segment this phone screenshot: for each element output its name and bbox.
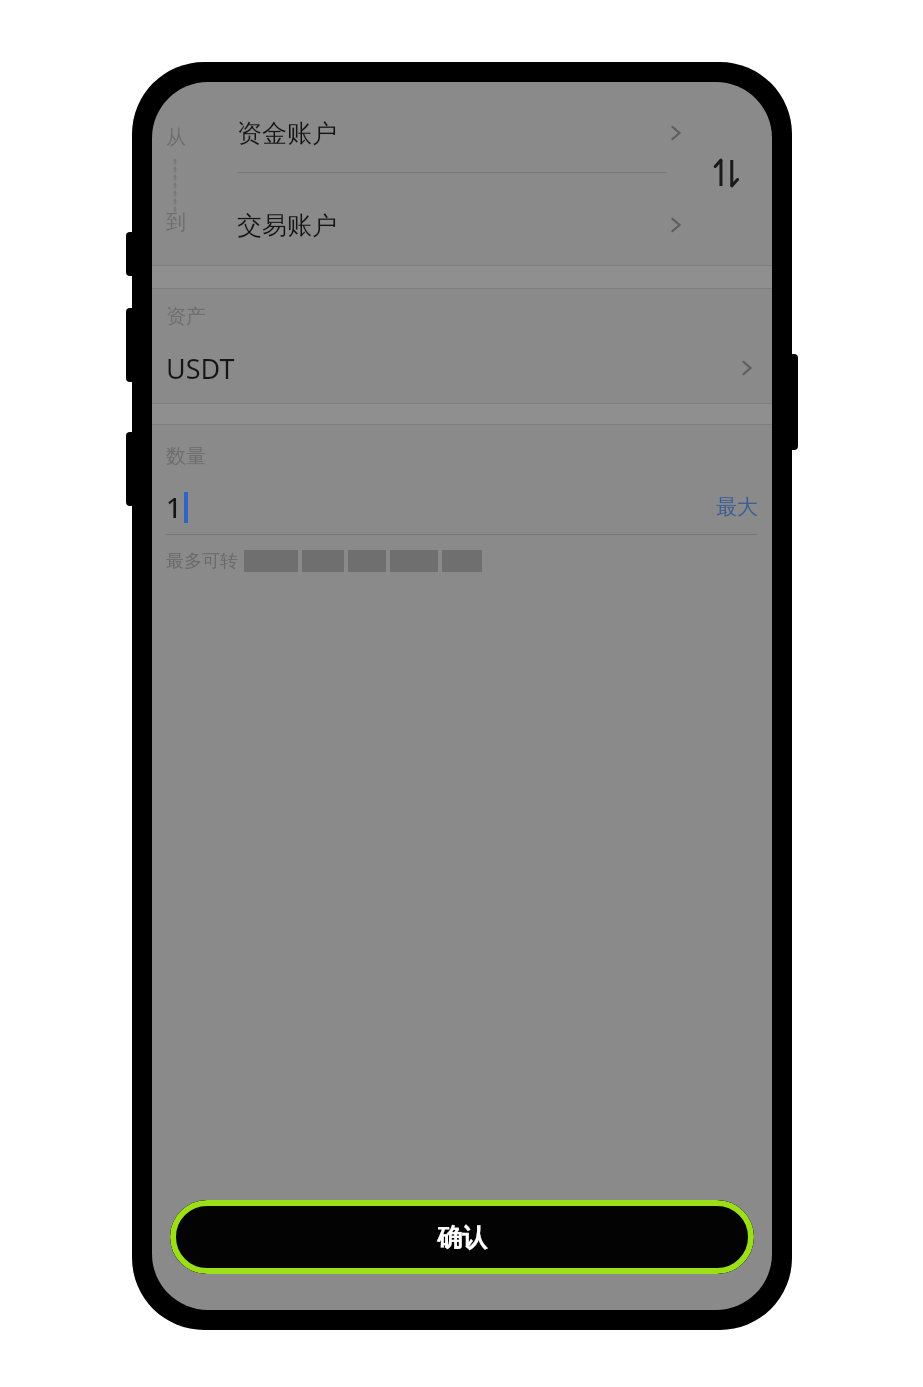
- staticText: 从: [166, 125, 186, 150]
- button[interactable]: 资金账户: [237, 96, 687, 170]
- button[interactable]: 确认: [170, 1200, 754, 1274]
- staticText: USDT: [166, 350, 235, 387]
- staticText: 资金账户: [237, 118, 337, 149]
- staticText: 最大: [716, 494, 758, 520]
- staticText: 确认: [437, 1222, 487, 1253]
- staticText: 数量: [166, 444, 206, 469]
- staticText: 交易账户: [237, 210, 337, 241]
- staticText: 最多可转: [166, 550, 238, 573]
- button[interactable]: Swap accounts: [697, 144, 755, 202]
- staticText: 1: [166, 489, 182, 526]
- staticText: 到: [166, 210, 186, 235]
- button[interactable]: USDT: [152, 338, 772, 398]
- staticText: 资产: [166, 304, 206, 329]
- button[interactable]: 最大: [716, 494, 758, 520]
- button[interactable]: 交易账户: [237, 188, 687, 262]
